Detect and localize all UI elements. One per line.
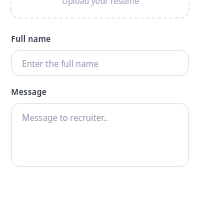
staticText: Enter the full name <box>22 58 99 70</box>
button[interactable]: Enter the full name <box>11 50 189 76</box>
staticText: Message <box>11 86 47 97</box>
staticText: Full name <box>11 33 51 44</box>
staticText: Message to recruiter.. <box>22 112 108 124</box>
staticText: Upload your resume <box>62 0 139 6</box>
button[interactable]: Upload your resume <box>0 0 200 19</box>
button[interactable]: Message to recruiter.. <box>11 103 189 167</box>
